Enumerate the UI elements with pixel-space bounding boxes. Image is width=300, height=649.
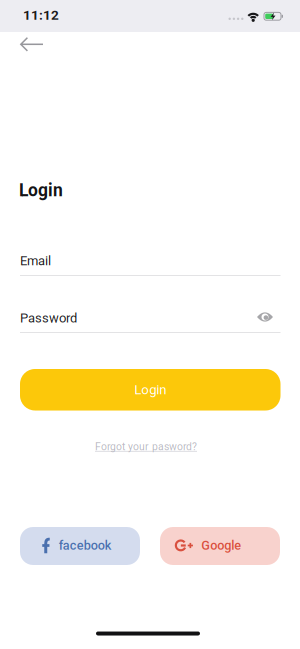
button[interactable]: Login	[20, 369, 280, 410]
button[interactable]: Back	[20, 37, 60, 63]
staticText: Email	[20, 253, 51, 268]
staticText: Login	[134, 382, 166, 397]
staticText: Login	[19, 180, 63, 200]
staticText: Password	[20, 310, 77, 326]
button[interactable]: facebook	[20, 527, 140, 565]
button[interactable]: Google	[160, 527, 280, 565]
staticText: 11:12	[23, 7, 59, 23]
staticText: facebook	[59, 538, 112, 553]
staticText: Forgot your pasword?	[95, 440, 197, 453]
button[interactable]: Forgot your pasword?	[0, 440, 296, 453]
staticText: Google	[201, 538, 241, 553]
button[interactable]: Show password	[251, 307, 279, 327]
